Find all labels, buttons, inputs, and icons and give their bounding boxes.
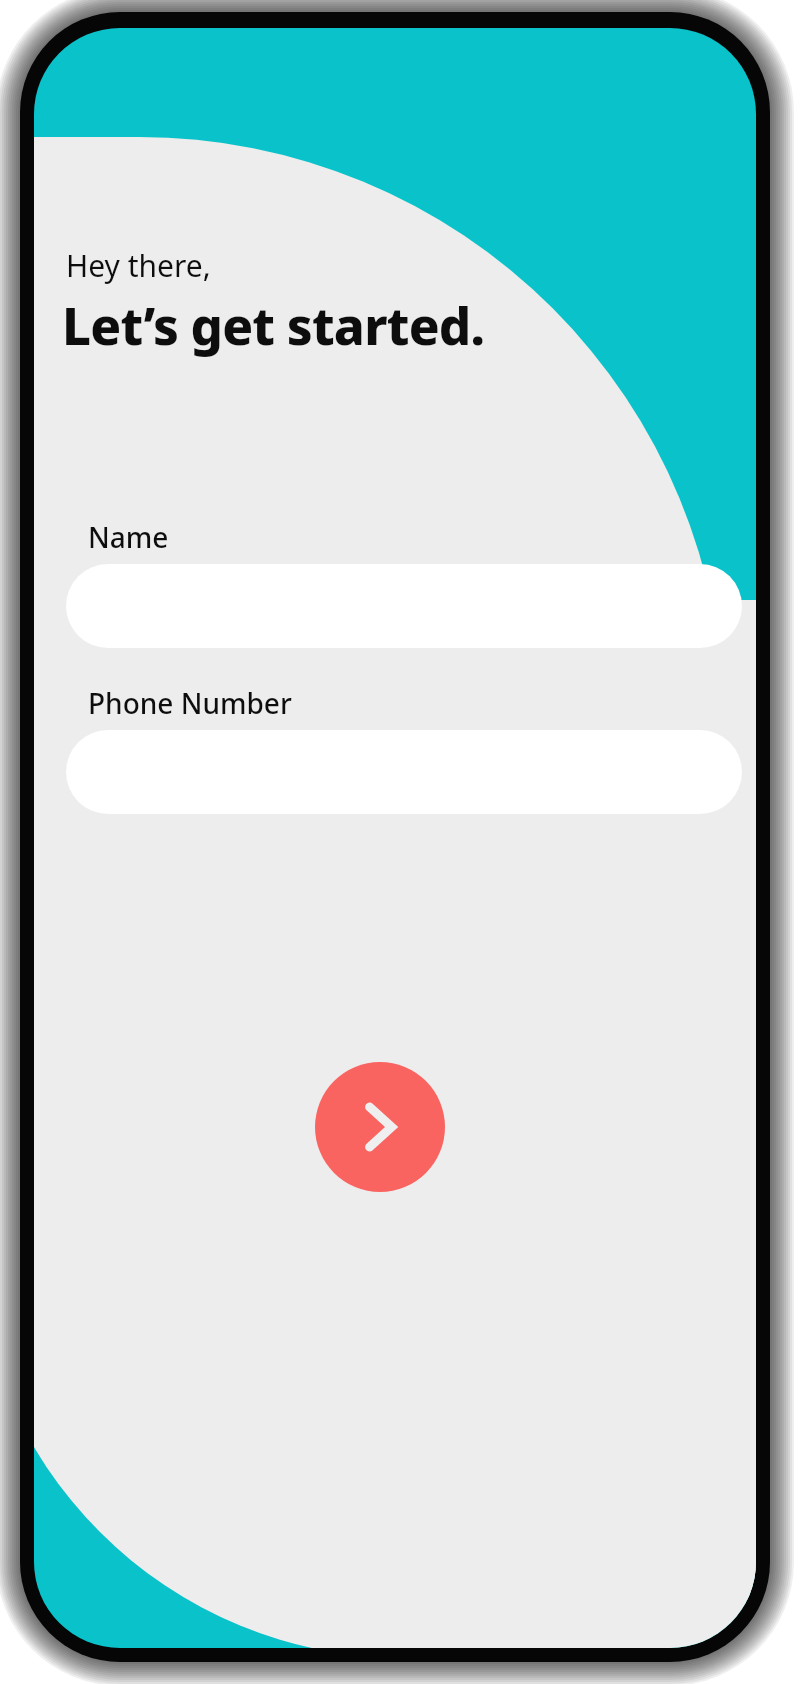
staticText: Let’s get started. [62, 290, 485, 359]
staticText: Hey there, [66, 245, 211, 286]
button[interactable]: Name input field [66, 564, 742, 648]
button[interactable]: Continue [315, 1062, 445, 1192]
staticText: Name [88, 518, 169, 556]
staticText: Phone Number [88, 684, 292, 722]
